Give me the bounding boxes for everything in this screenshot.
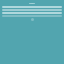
- button[interactable]: [2, 9, 62, 11]
- staticText: Timer: [2, 2, 62, 5]
- button[interactable]: [2, 12, 62, 14]
- button[interactable]: [2, 6, 62, 8]
- button[interactable]: Start: [31, 18, 34, 21]
